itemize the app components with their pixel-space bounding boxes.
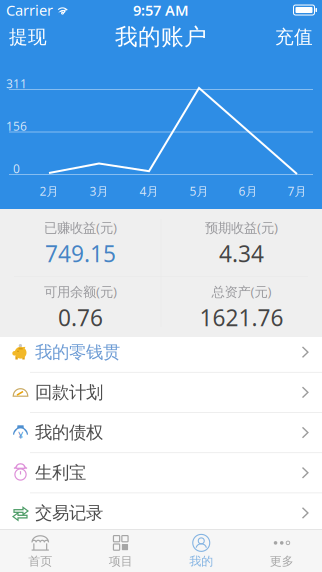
staticText: 项目 — [109, 554, 133, 569]
staticText: 交易记录 — [35, 502, 103, 524]
staticText: 生利宝 — [35, 462, 86, 483]
button[interactable]: 回款计划 — [0, 373, 322, 413]
staticText: 我的债权 — [35, 422, 103, 443]
staticText: 3月 — [89, 183, 108, 199]
button[interactable]: 提现 — [0, 20, 56, 54]
staticText: Carrier — [6, 0, 53, 20]
staticText: 已赚收益(元) — [44, 219, 117, 236]
button[interactable]: 项目 — [80, 529, 161, 572]
staticText: 回款计划 — [35, 382, 103, 403]
button[interactable]: ¥ — [0, 413, 322, 453]
staticText: 可用余额(元) — [44, 283, 117, 300]
button[interactable]: 生利宝 — [0, 453, 322, 493]
staticText: ¥ — [18, 429, 23, 441]
staticText: 我的零钱贯 — [35, 342, 120, 363]
staticText: 156 — [6, 118, 27, 134]
button[interactable]: 我的零钱贯 — [0, 332, 322, 373]
staticText: 0.76 — [58, 302, 103, 332]
staticText: 首页 — [28, 554, 52, 569]
staticText: 我的账户 — [115, 23, 207, 51]
staticText: 充值 — [275, 25, 313, 48]
button[interactable]: 我的 — [161, 529, 241, 572]
button[interactable]: 首页 — [0, 529, 80, 572]
staticText: 4.34 — [219, 238, 264, 268]
staticText: 7月 — [287, 183, 306, 199]
button[interactable]: 充值 — [266, 20, 322, 54]
staticText: 更多 — [270, 554, 294, 569]
staticText: 5月 — [189, 183, 208, 199]
staticText: 6月 — [238, 183, 257, 199]
staticText: 我的 — [189, 554, 213, 569]
staticText: 9:57 AM — [133, 0, 189, 20]
staticText: 总资产(元) — [211, 283, 271, 300]
staticText: 预期收益(元) — [205, 219, 278, 236]
staticText: 311 — [6, 75, 27, 91]
button[interactable]: 更多 — [241, 529, 322, 572]
staticText: 749.15 — [45, 238, 116, 268]
staticText: 提现 — [9, 25, 47, 48]
staticText: 2月 — [39, 183, 58, 199]
staticText: 1621.76 — [199, 302, 283, 332]
button[interactable]: 交易记录 — [0, 493, 322, 533]
staticText: 0 — [13, 160, 20, 176]
staticText: 4月 — [139, 183, 158, 199]
